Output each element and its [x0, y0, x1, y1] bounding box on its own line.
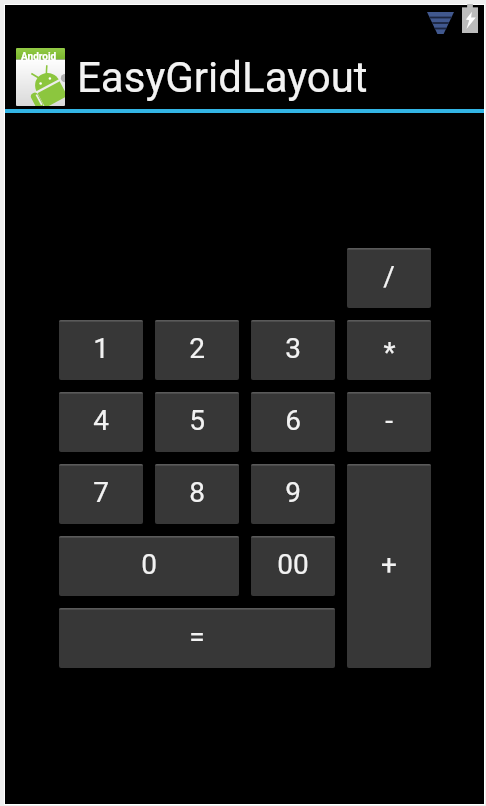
staticText: 0 [141, 548, 157, 581]
button[interactable]: 4 [59, 392, 143, 452]
staticText: 00 [277, 548, 309, 581]
button[interactable]: * [347, 320, 431, 380]
staticText: 9 [285, 476, 301, 509]
button[interactable]: 0 [59, 536, 239, 596]
other: Battery charging [462, 4, 478, 33]
button[interactable]: - [347, 392, 431, 452]
staticText: = [189, 620, 205, 653]
staticText: 3 [285, 332, 301, 365]
staticText: / [383, 260, 395, 293]
staticText: * [383, 336, 396, 369]
staticText: Android [21, 51, 57, 63]
button[interactable]: 7 [59, 464, 143, 524]
staticText: EasyGridLayout [77, 53, 368, 102]
staticText: 8 [189, 476, 205, 509]
button[interactable]: 2 [155, 320, 239, 380]
button[interactable]: 00 [251, 536, 335, 596]
staticText: - [385, 404, 393, 437]
staticText: 6 [285, 404, 301, 437]
button[interactable]: / [347, 248, 431, 308]
staticText: + [381, 548, 397, 581]
button[interactable]: 1 [59, 320, 143, 380]
other: Signal strength [427, 12, 454, 34]
staticText: 7 [93, 476, 109, 509]
staticText: 5 [189, 404, 205, 437]
button[interactable]: 5 [155, 392, 239, 452]
button[interactable]: 3 [251, 320, 335, 380]
button[interactable]: 8 [155, 464, 239, 524]
button[interactable]: + [347, 464, 431, 668]
button[interactable]: = [59, 608, 335, 668]
button[interactable]: 6 [251, 392, 335, 452]
staticText: 1 [93, 332, 109, 365]
staticText: 2 [189, 332, 205, 365]
button[interactable]: 9 [251, 464, 335, 524]
staticText: 4 [93, 404, 109, 437]
